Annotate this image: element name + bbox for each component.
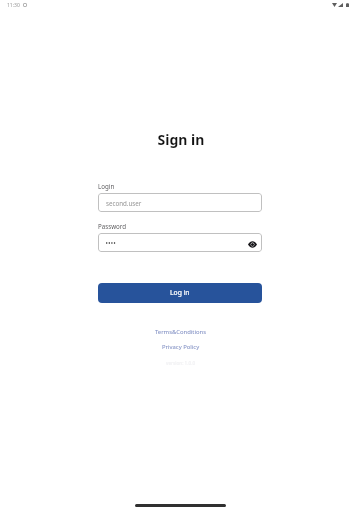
button[interactable]: Toggle password visibility [98,233,262,252]
button[interactable]: second.user [98,193,262,212]
staticText: version: 1.0.0 [166,360,196,366]
staticText: Sign in [1,130,360,149]
staticText: second.user [106,199,142,207]
staticText: Password [98,222,126,230]
button[interactable]: Privacy Policy [159,342,203,352]
staticText: 11:30 [7,2,20,9]
staticText: Log in [170,288,190,297]
staticText: Login [98,182,115,190]
staticText: Privacy Policy [162,343,200,351]
button[interactable]: Toggle password visibility [246,238,258,250]
button[interactable]: Log in [98,283,262,303]
button[interactable]: Terms&Conditions [152,327,210,337]
staticText: Terms&Conditions [155,328,207,336]
